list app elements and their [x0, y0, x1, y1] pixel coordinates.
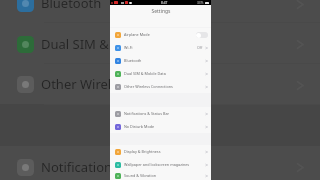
button[interactable]: Sound & Vibration	[110, 171, 211, 180]
staticText: Wi-Fi	[124, 45, 133, 50]
staticText: Bluetooth	[124, 58, 142, 63]
staticText: Notification	[41, 158, 113, 176]
button[interactable]: Other Wireless Connections	[110, 80, 211, 93]
button[interactable]: Wi-Fi	[110, 41, 211, 54]
button[interactable]: No Disturb Mode	[110, 120, 211, 133]
staticText: Settings	[151, 8, 171, 15]
staticText: 33%	[197, 1, 204, 5]
staticText: 8:47	[161, 1, 168, 5]
button[interactable]: Dual SIM & Mobile Data	[110, 67, 211, 80]
staticText: Notifications & Status Bar	[124, 111, 170, 116]
staticText: Bluetooth	[41, 0, 102, 12]
staticText: Wallpaper and lockscreen magazines	[124, 162, 190, 167]
button[interactable]: Bluetooth	[110, 54, 211, 67]
button[interactable]: Wallpaper and lockscreen magazines	[110, 158, 211, 171]
staticText: Dual SIM &	[41, 35, 109, 53]
staticText: Other Wirel	[41, 75, 112, 93]
button[interactable]: Airplane Mode	[110, 28, 211, 41]
button[interactable]: Display & Brightness	[110, 145, 211, 158]
button[interactable]: Notifications & Status Bar	[110, 107, 211, 120]
staticText: Sound & Vibration	[124, 173, 156, 178]
staticText: Dual SIM & Mobile Data	[124, 71, 166, 76]
staticText: Other Wireless Connections	[124, 84, 173, 89]
staticText: Display & Brightness	[124, 149, 161, 154]
staticText: Airplane Mode	[124, 32, 150, 37]
staticText: Off	[197, 45, 203, 50]
staticText: No Disturb Mode	[124, 124, 155, 129]
